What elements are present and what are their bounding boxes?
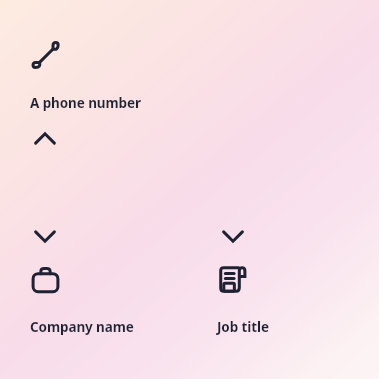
button[interactable]: Company name <box>30 318 134 336</box>
button[interactable]: Collapse <box>32 126 58 152</box>
button[interactable]: A phone number <box>30 94 141 112</box>
button[interactable]: Phone <box>30 40 62 72</box>
button[interactable]: Expand job title <box>220 223 246 249</box>
button[interactable]: Job title <box>217 264 248 295</box>
button[interactable]: Company <box>30 265 61 296</box>
button[interactable]: Expand company name <box>32 223 58 249</box>
button[interactable]: Job title <box>217 318 269 336</box>
